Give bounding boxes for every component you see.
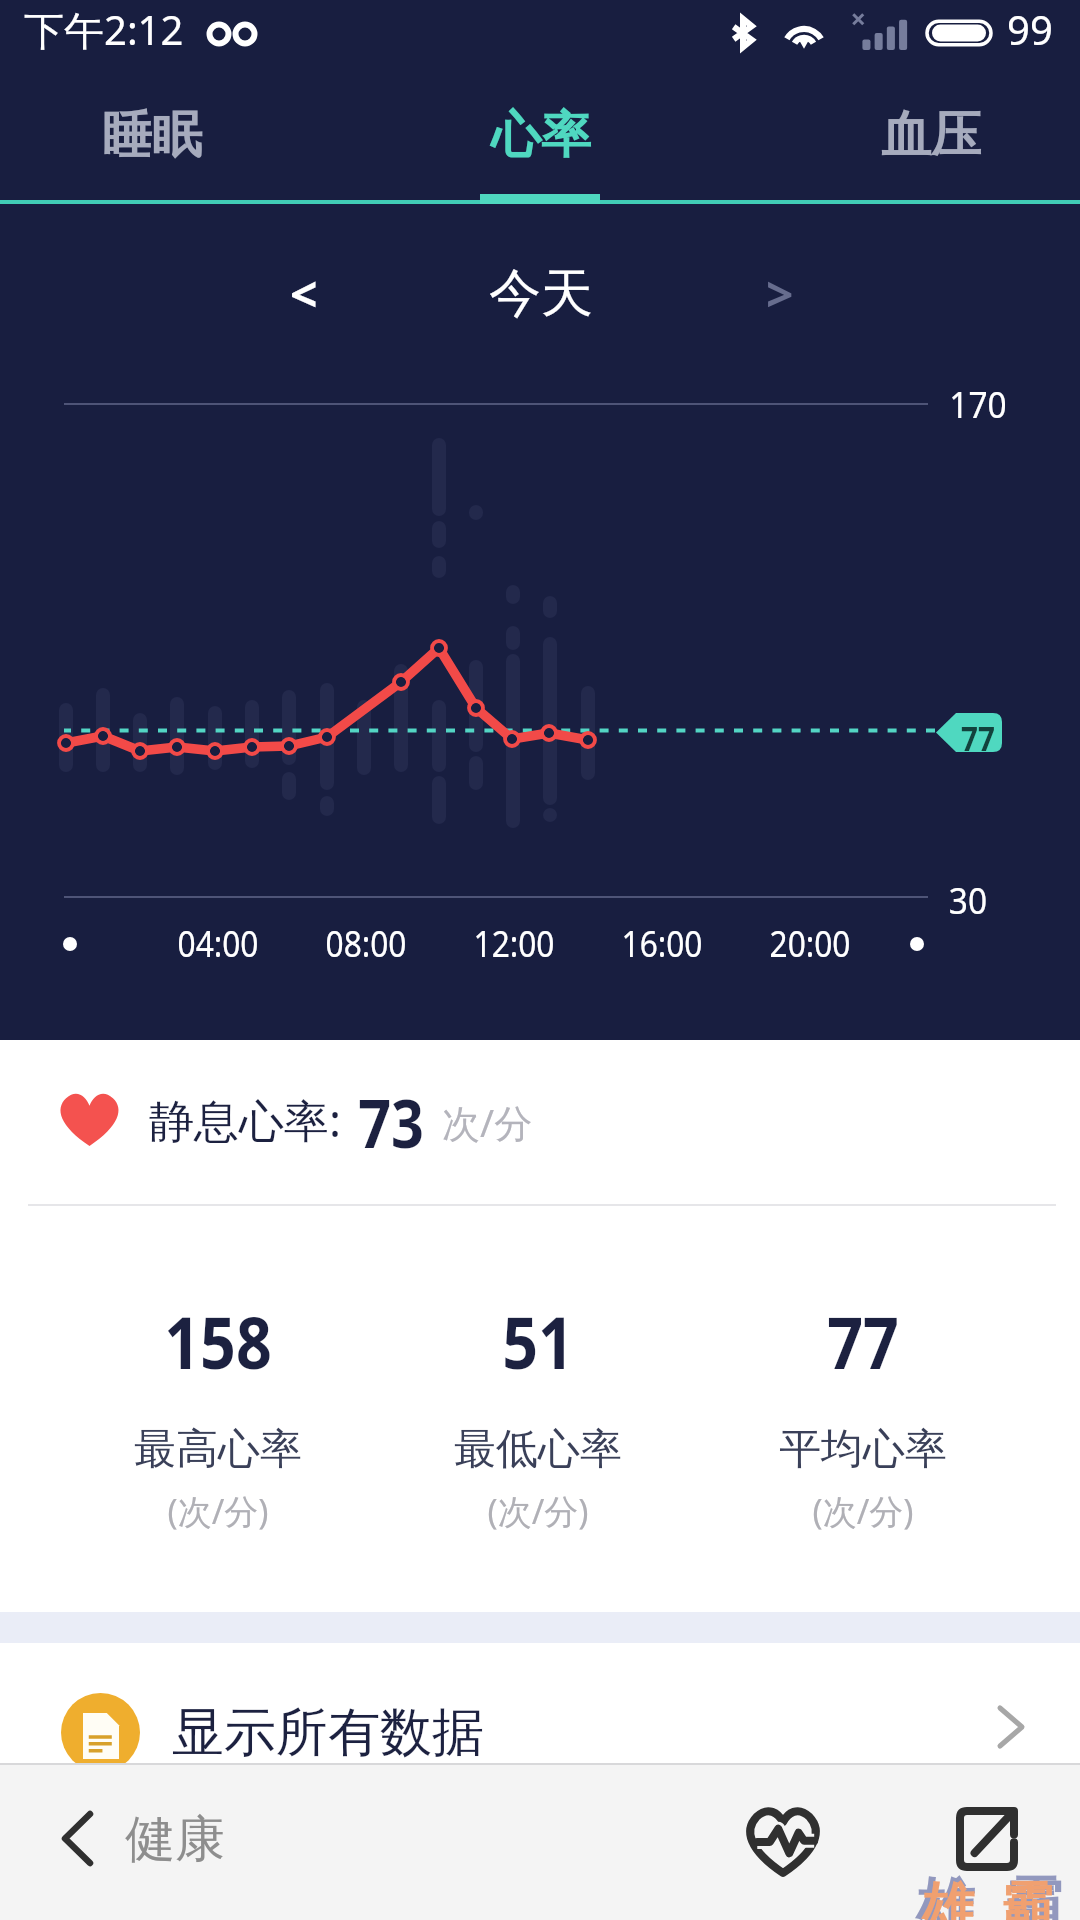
staticText: 20:00 [740, 919, 880, 968]
staticText: 08:00 [296, 919, 436, 968]
button[interactable]: Back to 健康 [36, 1780, 266, 1902]
button[interactable]: 显示所有数据 [0, 1643, 1080, 1763]
button[interactable]: 血压 [791, 72, 1071, 204]
staticText: 血压 [881, 104, 981, 167]
button[interactable]: Heart rate [727, 1786, 839, 1898]
staticText: 170 [948, 380, 1008, 429]
staticText: 77 [960, 715, 996, 754]
staticText: 99 [1007, 2, 1053, 56]
button[interactable]: Previous day [262, 251, 346, 335]
staticText: 显示所有数据 [172, 1700, 484, 1766]
staticText: 04:00 [148, 919, 288, 968]
staticText: 16:00 [592, 919, 732, 968]
staticText: 最低心率 [408, 1423, 668, 1476]
staticText: 158 [105, 1292, 331, 1390]
staticText: 30 [947, 876, 988, 925]
staticText: 静息心率: [149, 1089, 342, 1150]
staticText: 平均心率 [733, 1423, 993, 1476]
staticText: > [766, 261, 794, 326]
staticText: 今天 [489, 261, 593, 327]
staticText: 12:00 [444, 919, 584, 968]
button[interactable]: Open in new window [931, 1783, 1043, 1895]
staticText: (次/分) [88, 1488, 348, 1534]
button[interactable]: 心率 [401, 72, 681, 204]
staticText: 下午2:12 [24, 2, 184, 57]
staticText: 次/分 [442, 1096, 533, 1148]
button[interactable]: Next day [738, 251, 822, 335]
staticText: 73 [355, 1077, 427, 1167]
button[interactable]: 睡眠 [12, 72, 292, 204]
staticText: 睡眠 [102, 104, 202, 167]
staticText: 77 [750, 1292, 976, 1390]
staticText: (次/分) [733, 1488, 993, 1534]
staticText: 心率 [491, 104, 591, 167]
staticText: < [290, 261, 318, 326]
staticText: (次/分) [408, 1488, 668, 1534]
staticText: 最高心率 [88, 1423, 348, 1476]
staticText: 51 [425, 1292, 651, 1390]
staticText: 雄 霸 [916, 1863, 1063, 1920]
staticText: 雄 霸 [922, 1869, 1054, 1920]
staticText: 健康 [125, 1808, 225, 1871]
button[interactable]: 今天 [461, 252, 621, 336]
